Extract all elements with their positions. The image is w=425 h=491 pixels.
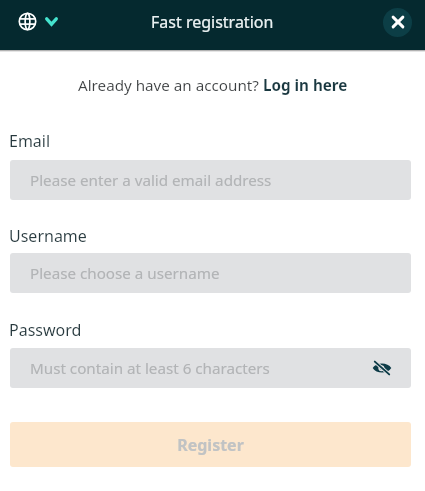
staticText: Fast registration <box>151 11 274 33</box>
button[interactable]: Please choose a username <box>10 253 411 293</box>
staticText: Must contain at least 6 characters <box>30 358 270 379</box>
staticText: Register <box>177 434 244 456</box>
button[interactable]: Select language <box>18 12 58 31</box>
button[interactable]: Please enter a valid email address <box>10 160 411 200</box>
button[interactable]: Log in here <box>263 75 348 96</box>
button[interactable]: Register <box>10 422 411 467</box>
staticText: Password <box>9 319 82 341</box>
staticText: Email <box>9 130 51 152</box>
button[interactable]: Show password <box>370 356 394 380</box>
staticText: Please choose a username <box>30 263 220 284</box>
staticText: Log in here <box>263 75 348 96</box>
button[interactable]: Must contain at least 6 characters <box>10 348 411 388</box>
button[interactable]: Close <box>383 8 412 37</box>
staticText: Username <box>9 225 87 247</box>
staticText: Already have an account? <box>78 75 263 96</box>
staticText: Please enter a valid email address <box>30 170 272 191</box>
